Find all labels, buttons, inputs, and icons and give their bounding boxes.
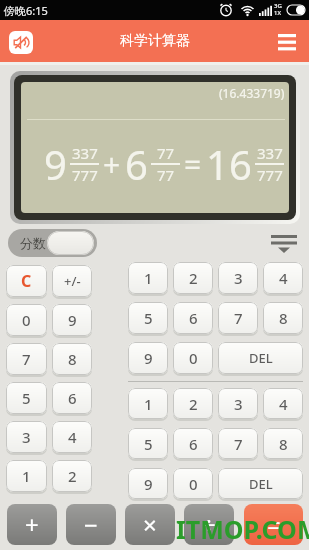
staticText: 8 bbox=[279, 434, 288, 454]
button[interactable]: 3 bbox=[218, 388, 258, 419]
button[interactable] bbox=[278, 34, 297, 52]
button[interactable]: 4 bbox=[263, 262, 303, 294]
staticText: 0 bbox=[189, 348, 198, 368]
staticText: DEL bbox=[249, 349, 273, 367]
button[interactable]: 0 bbox=[173, 468, 213, 499]
staticText: (16.433719) bbox=[219, 85, 285, 101]
button[interactable]: 2 bbox=[173, 262, 213, 294]
staticText: 1 bbox=[144, 394, 153, 414]
button[interactable]: 6 bbox=[52, 382, 92, 414]
staticText: 337 bbox=[72, 143, 98, 163]
button[interactable]: 8 bbox=[263, 302, 303, 334]
button[interactable]: 9 bbox=[128, 342, 168, 374]
button[interactable]: 1 bbox=[128, 388, 168, 419]
staticText: = bbox=[184, 144, 202, 185]
button[interactable]: 7 bbox=[218, 428, 258, 459]
button[interactable]: 9 bbox=[52, 304, 92, 336]
button[interactable]: 7 bbox=[218, 302, 258, 334]
staticText: 16 bbox=[206, 137, 252, 191]
staticText: × bbox=[143, 508, 157, 541]
button[interactable]: 4 bbox=[52, 421, 92, 453]
staticText: 3G 1X bbox=[274, 2, 282, 17]
button[interactable] bbox=[270, 235, 298, 253]
button[interactable]: − bbox=[66, 504, 116, 545]
staticText: 6 bbox=[68, 388, 77, 408]
staticText: 科学计算器 bbox=[120, 32, 190, 50]
button[interactable]: DEL bbox=[218, 468, 303, 499]
button[interactable] bbox=[9, 31, 33, 54]
button[interactable]: 2 bbox=[52, 460, 92, 492]
button[interactable]: +/- bbox=[52, 265, 92, 297]
button[interactable]: 3 bbox=[6, 421, 47, 453]
staticText: 2 bbox=[189, 394, 198, 414]
button[interactable]: 分数 bbox=[8, 229, 97, 257]
staticText: 6 bbox=[189, 308, 198, 328]
staticText: 8 bbox=[279, 308, 288, 328]
button[interactable]: 5 bbox=[128, 302, 168, 334]
staticText: 0 bbox=[189, 474, 198, 494]
staticText: 9 bbox=[144, 348, 153, 368]
staticText: 9 bbox=[144, 474, 153, 494]
staticText: − bbox=[84, 508, 98, 541]
button[interactable]: 1 bbox=[128, 262, 168, 294]
button[interactable]: 0 bbox=[6, 304, 47, 336]
staticText: 0 bbox=[22, 310, 31, 330]
staticText: 分数 bbox=[20, 235, 46, 251]
staticText: 8 bbox=[68, 349, 77, 369]
button[interactable]: 4 bbox=[263, 388, 303, 419]
staticText: 77 bbox=[157, 143, 175, 163]
button[interactable]: 6 bbox=[173, 302, 213, 334]
button[interactable]: + bbox=[7, 504, 57, 545]
button[interactable]: C bbox=[6, 265, 47, 297]
staticText: 5 bbox=[144, 308, 153, 328]
staticText: + bbox=[25, 508, 39, 541]
staticText: DEL bbox=[249, 475, 273, 493]
staticText: 1 bbox=[144, 268, 153, 288]
staticText: 6 bbox=[125, 137, 148, 191]
staticText: 6 bbox=[189, 434, 198, 454]
button[interactable]: 8 bbox=[263, 428, 303, 459]
staticText: 777 bbox=[257, 165, 283, 185]
button[interactable]: 9 bbox=[128, 468, 168, 499]
staticText: = bbox=[267, 508, 281, 541]
staticText: + bbox=[103, 144, 121, 185]
staticText: 5 bbox=[22, 388, 31, 408]
staticText: ÷ bbox=[202, 508, 216, 541]
button[interactable]: × bbox=[125, 504, 175, 545]
button[interactable]: 6 bbox=[173, 428, 213, 459]
button[interactable]: ÷ bbox=[184, 504, 234, 545]
staticText: 3 bbox=[234, 394, 243, 414]
staticText: 777 bbox=[72, 165, 98, 185]
button[interactable]: 1 bbox=[6, 460, 47, 492]
staticText: 4 bbox=[279, 268, 288, 288]
staticText: 337 bbox=[257, 143, 283, 163]
staticText: 7 bbox=[22, 349, 31, 369]
staticText: 77 bbox=[157, 165, 175, 185]
button[interactable]: 2 bbox=[173, 388, 213, 419]
staticText: 3 bbox=[22, 427, 31, 447]
staticText: 7 bbox=[234, 308, 243, 328]
button[interactable]: 7 bbox=[6, 343, 47, 375]
staticText: 9 bbox=[68, 310, 77, 330]
staticText: 2 bbox=[68, 466, 77, 486]
staticText: 3 bbox=[234, 268, 243, 288]
staticText: 5 bbox=[144, 434, 153, 454]
staticText: ITMOP.COM bbox=[176, 512, 309, 546]
button[interactable]: 8 bbox=[52, 343, 92, 375]
button[interactable]: 5 bbox=[128, 428, 168, 459]
button[interactable]: 5 bbox=[6, 382, 47, 414]
staticText: 傍晚6:15 bbox=[4, 3, 48, 18]
staticText: +/- bbox=[64, 272, 81, 290]
staticText: 1 bbox=[22, 466, 31, 486]
button[interactable]: = bbox=[244, 504, 303, 545]
button[interactable]: 3 bbox=[218, 262, 258, 294]
staticText: 7 bbox=[234, 434, 243, 454]
staticText: 9 bbox=[44, 137, 67, 191]
staticText: 2 bbox=[189, 268, 198, 288]
staticText: 4 bbox=[68, 427, 77, 447]
button[interactable]: 0 bbox=[173, 342, 213, 374]
staticText: 4 bbox=[279, 394, 288, 414]
button[interactable]: DEL bbox=[218, 342, 303, 374]
staticText: C bbox=[21, 270, 32, 292]
